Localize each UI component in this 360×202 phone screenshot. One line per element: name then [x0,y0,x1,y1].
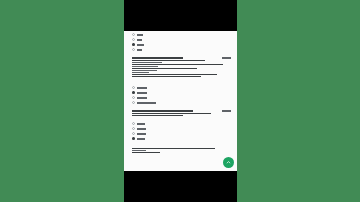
button[interactable] [132,32,231,37]
button[interactable] [132,90,231,95]
button[interactable] [132,37,231,42]
button[interactable] [132,126,231,131]
button[interactable] [132,85,231,90]
button[interactable] [132,95,231,100]
button[interactable] [132,47,231,52]
button[interactable] [132,131,231,136]
button[interactable]: Scroll to top [124,0,237,202]
button[interactable] [132,42,231,47]
button[interactable] [132,136,231,141]
button[interactable]: Scroll to top [223,157,234,168]
button[interactable] [132,100,231,105]
button[interactable] [132,121,231,126]
